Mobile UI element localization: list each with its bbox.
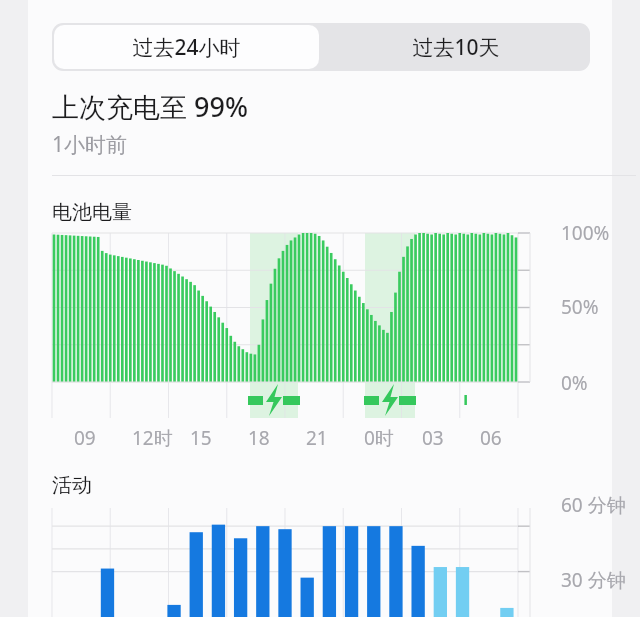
staticText: 1小时前 — [52, 130, 128, 159]
staticText: 15 — [190, 425, 212, 451]
staticText: 30 分钟 — [561, 567, 626, 593]
staticText: 06 — [480, 425, 502, 451]
button[interactable]: 过去10天 — [321, 23, 590, 71]
staticText: 电池电量 — [52, 200, 132, 225]
staticText: 18 — [248, 425, 270, 451]
staticText: 09 — [74, 425, 96, 451]
staticText: 21 — [306, 425, 328, 451]
staticText: 0% — [561, 370, 588, 396]
staticText: 50% — [561, 294, 599, 320]
staticText: 过去10天 — [412, 33, 500, 62]
button[interactable]: 过去24小时 — [54, 25, 319, 69]
staticText: 60 分钟 — [561, 492, 626, 518]
staticText: 100% — [561, 220, 610, 246]
staticText: 03 — [422, 425, 444, 451]
staticText: 过去24小时 — [132, 33, 241, 62]
staticText: 上次充电至 99% — [52, 88, 248, 125]
staticText: 12时 — [132, 425, 173, 451]
staticText: 活动 — [52, 473, 92, 498]
staticText: 0时 — [364, 425, 394, 451]
